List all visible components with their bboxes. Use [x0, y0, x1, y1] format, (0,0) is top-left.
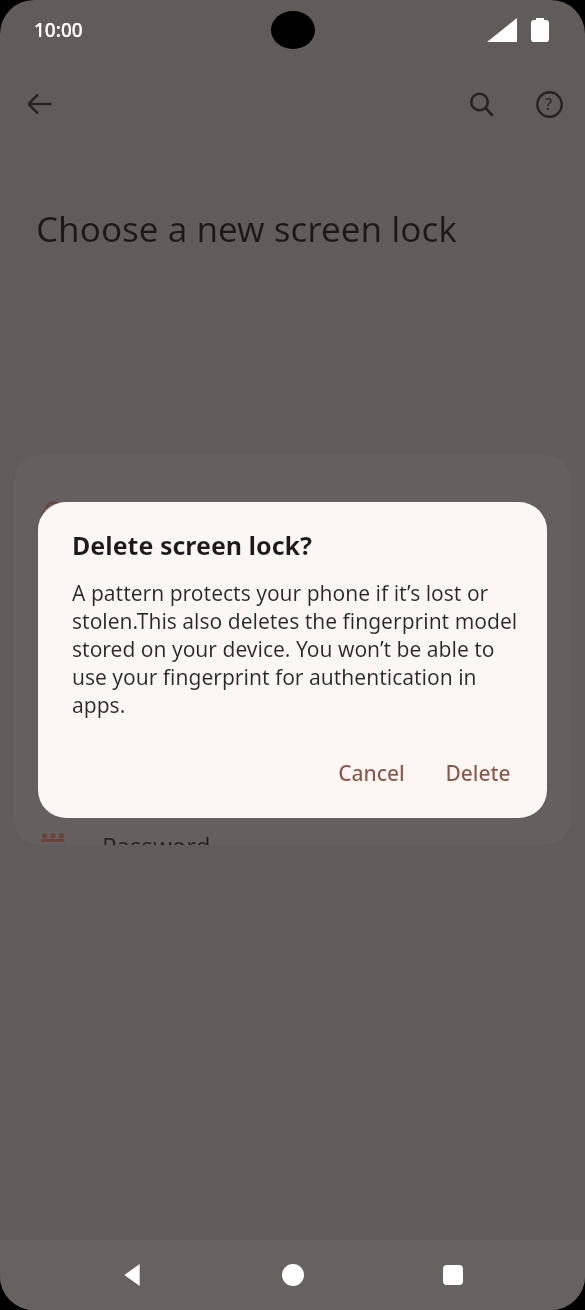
staticText: 10:00 [34, 17, 83, 43]
button[interactable]: Pattern [14, 651, 571, 729]
staticText: Password [102, 829, 211, 845]
button[interactable]: Delete [431, 749, 525, 798]
button[interactable]: Password [14, 829, 571, 845]
button[interactable]: Cancel [324, 749, 419, 798]
button[interactable]: Recent apps [425, 1247, 481, 1303]
button[interactable]: Home [265, 1247, 321, 1303]
staticText: PIN [102, 496, 143, 529]
button[interactable]: Search [457, 80, 505, 128]
button[interactable]: Back [16, 80, 64, 128]
staticText: Delete screen lock? [72, 528, 313, 562]
staticText: ? [545, 93, 553, 115]
staticText: A pattern protects your phone if it’s lo… [72, 579, 519, 719]
staticText: Delete [445, 759, 511, 788]
button[interactable]: Back [104, 1247, 160, 1303]
staticText: Choose a new screen lock [36, 205, 545, 253]
staticText: Pattern [102, 674, 186, 707]
button[interactable]: PIN [14, 473, 571, 551]
button[interactable]: Help [525, 80, 573, 128]
staticText: Cancel [338, 759, 405, 788]
